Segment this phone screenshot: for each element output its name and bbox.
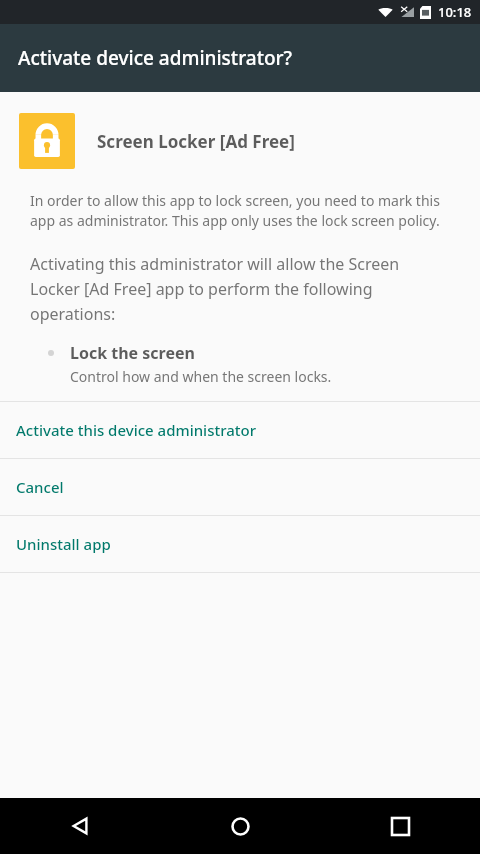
staticText: Activating this administrator will allow… [30,253,450,324]
staticText: Activate device administrator? [18,45,293,71]
staticText: In order to allow this app to lock scree… [30,191,452,231]
button[interactable]: Uninstall app [0,516,480,572]
staticText: Control how and when the screen locks. [70,367,332,386]
staticText: Cancel [16,477,64,497]
staticText: Uninstall app [16,534,111,554]
staticText: Lock the screen [70,342,195,364]
staticText: Activate this device administrator [16,420,257,440]
button[interactable]: Cancel [0,459,480,515]
button[interactable]: Recent apps [320,798,480,854]
staticText: 10:18 [438,3,472,21]
staticText: Screen Locker [Ad Free] [97,130,295,153]
button[interactable]: Activate this device administrator [0,402,480,458]
button[interactable]: Back [0,798,160,854]
button[interactable]: Home [160,798,320,854]
